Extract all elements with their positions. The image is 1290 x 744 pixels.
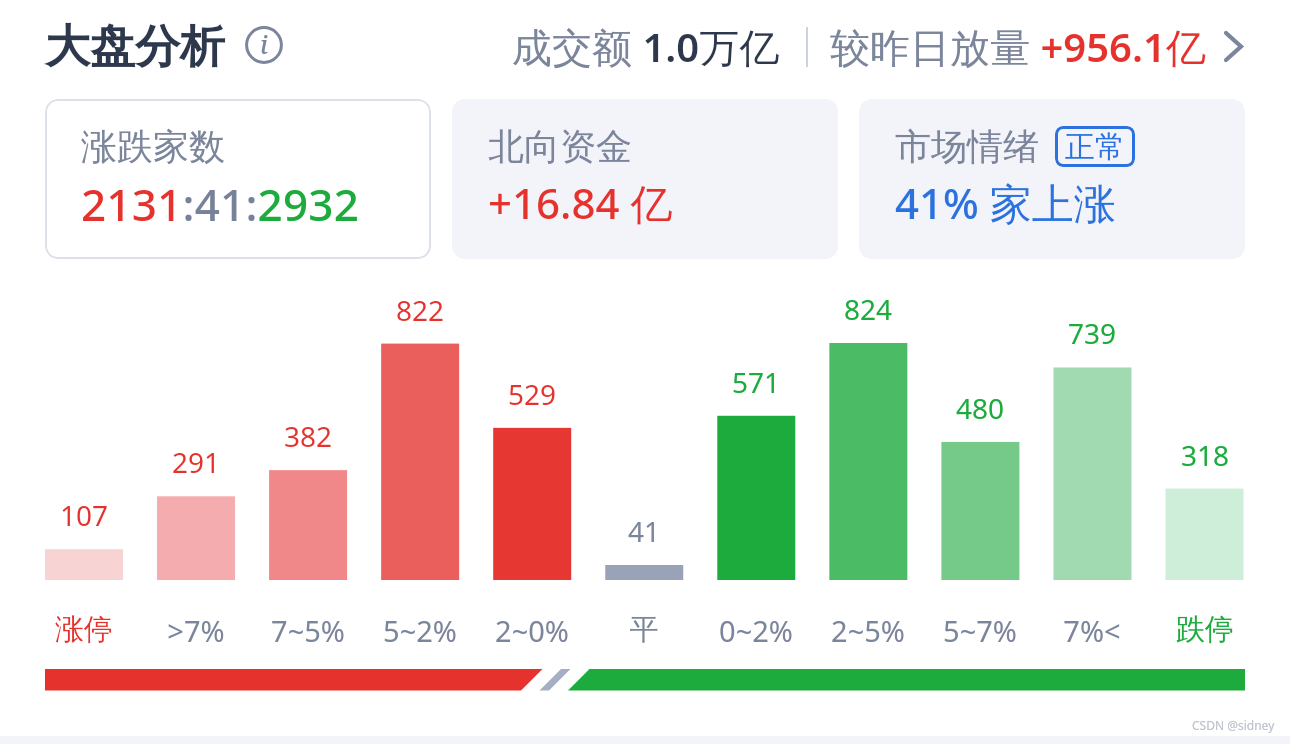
button[interactable]: 市场情绪 <box>859 99 1245 259</box>
staticText: >7% <box>145 611 247 650</box>
staticText: 0~2% <box>705 611 807 650</box>
staticText: i <box>260 27 268 61</box>
staticText: 571 <box>717 363 795 401</box>
button[interactable]: 成交额 1.0万亿 <box>512 19 1290 74</box>
staticText: 7~5% <box>257 611 359 650</box>
staticText: 2131:41:2932 <box>81 174 360 234</box>
staticText: 7%< <box>1041 611 1143 650</box>
staticText: 739 <box>1053 314 1131 352</box>
button[interactable]: 大盘分析 <box>45 18 283 75</box>
staticText: 529 <box>493 375 571 413</box>
staticText: 较昨日放量 +956.1亿 <box>830 19 1206 74</box>
staticText: 824 <box>829 290 907 328</box>
staticText: +16.84 亿 <box>488 174 673 231</box>
staticText: 5~2% <box>369 611 471 650</box>
staticText: 正常 <box>1065 128 1125 166</box>
staticText: CSDN @sidney <box>1192 717 1275 733</box>
staticText: 涨停 <box>33 611 135 648</box>
staticText: 市场情绪 <box>895 124 1039 169</box>
button[interactable]: 涨跌家数 <box>45 99 431 259</box>
staticText: 北向资金 <box>488 124 632 169</box>
button[interactable]: 北向资金 <box>452 99 838 259</box>
staticText: 107 <box>45 496 123 534</box>
staticText: 291 <box>157 443 235 481</box>
staticText: 480 <box>941 389 1019 427</box>
staticText: 318 <box>1166 436 1244 474</box>
staticText: 5~7% <box>929 611 1031 650</box>
staticText: 成交额 1.0万亿 <box>512 19 780 74</box>
staticText: 跌停 <box>1154 611 1256 648</box>
staticText: 822 <box>381 291 459 329</box>
staticText: 41% 家上涨 <box>895 174 1116 231</box>
other: Info <box>245 26 283 64</box>
staticText: 2~5% <box>817 611 919 650</box>
staticText: 涨跌家数 <box>81 124 225 169</box>
staticText: 大盘分析 <box>45 19 225 76</box>
staticText: 2~0% <box>481 611 583 650</box>
staticText: 382 <box>269 417 347 455</box>
other: More <box>1224 31 1243 62</box>
staticText: 41 <box>605 512 683 550</box>
staticText: 平 <box>593 611 695 648</box>
